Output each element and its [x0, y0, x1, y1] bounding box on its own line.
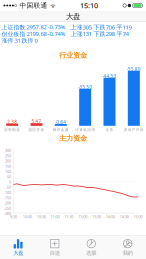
staticText: 创业板指 2199.68 -0.74% [1, 30, 65, 38]
staticText: 150 [5, 164, 11, 169]
staticText: 上证指数 2957.82 -0.73% [1, 23, 65, 31]
staticText: 9:30 [10, 214, 17, 219]
staticText: 上涨305 下跌706 平119 [70, 23, 131, 31]
staticText: 10:30 [37, 214, 46, 219]
staticText: 行业资金 [59, 51, 87, 60]
staticText: 13:30 [92, 214, 101, 219]
button[interactable]: 选股 [73, 236, 109, 259]
staticText: 园区开发 [28, 128, 44, 132]
staticText: -300 [4, 211, 11, 216]
staticText: 10:00 [23, 214, 32, 219]
staticText: -150 [4, 195, 11, 200]
staticText: 选股 [86, 250, 96, 256]
staticText: -100 [4, 190, 11, 195]
staticText: 上涨131 下跌298 平74 [70, 30, 128, 38]
staticText: 100 [5, 169, 11, 174]
staticText: 11:00 [50, 214, 59, 219]
staticText: 14:30 [120, 214, 129, 219]
staticText: 中国联通 [17, 1, 47, 10]
staticText: 0 [9, 179, 11, 185]
staticText: -200 [4, 200, 11, 206]
staticText: 大盘 [66, 12, 80, 21]
staticText: 11:30 [64, 214, 73, 219]
staticText: 250 [5, 153, 11, 158]
staticText: 50 [7, 174, 11, 179]
staticText: 大盘 [13, 250, 23, 256]
staticText: -250 [4, 206, 11, 211]
staticText: 我的 [123, 250, 133, 256]
staticText: 饮料制造 [4, 128, 20, 132]
staticText: 13:00 [78, 214, 87, 219]
staticText: 300 [5, 148, 11, 153]
staticText: -35.50 [78, 84, 92, 90]
staticText: 2.38 [7, 119, 17, 125]
staticText: 15:00 [133, 214, 142, 219]
staticText: -44.53 [102, 73, 116, 79]
staticText: 证券 [105, 128, 113, 132]
staticText: -0.84 [55, 119, 66, 125]
staticText: 涨停 31 跌停 0 [1, 36, 37, 44]
button[interactable]: 我的 [109, 236, 146, 259]
staticText: 主力资金 [59, 134, 87, 143]
button[interactable]: 大盘 [0, 236, 36, 259]
staticText: 5.47 [31, 119, 41, 125]
staticText: 14:00 [106, 214, 115, 219]
staticText: 稀有金属 [53, 128, 69, 132]
button[interactable]: 自选 [36, 236, 73, 259]
staticText: 计算机应用 [75, 128, 95, 132]
staticText: 房地产开发 [124, 128, 144, 132]
staticText: ᯤ [48, 1, 55, 9]
staticText: -55.80 [127, 66, 141, 72]
staticText: -50 [6, 185, 11, 190]
staticText: 自选 [50, 250, 60, 256]
staticText: 200 [5, 158, 11, 164]
staticText: 15:10 [80, 1, 98, 10]
